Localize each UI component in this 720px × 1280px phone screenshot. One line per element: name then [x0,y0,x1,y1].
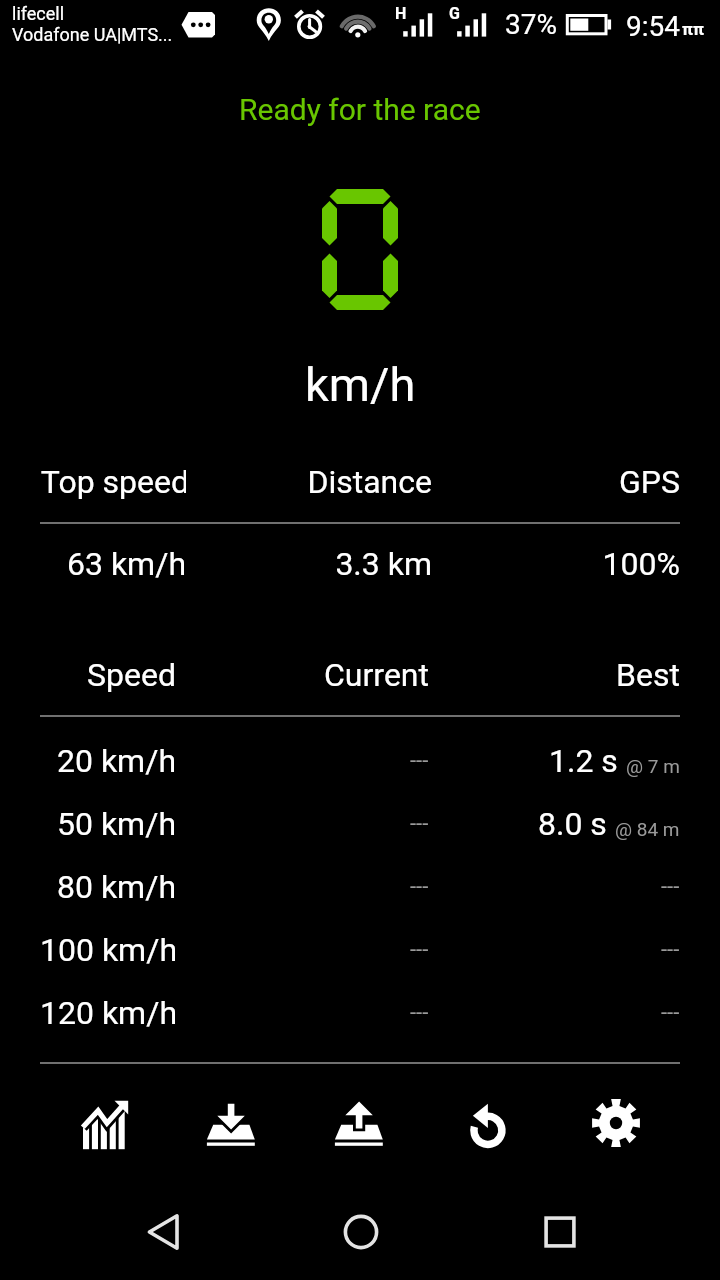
staticText: 63 km/h [40,545,186,583]
staticText: Top speed [40,463,186,501]
staticText: --- [661,1000,680,1026]
staticText: @ 84 m [615,818,680,840]
staticText: 50 km/h [40,805,176,843]
staticText: --- [661,874,680,900]
button[interactable]: Back [131,1200,195,1264]
staticText: 1.2 s [549,742,618,780]
staticText: --- [410,1000,429,1026]
staticText: 9:54 [626,10,680,43]
button[interactable]: Settings [552,1087,680,1159]
staticText: 100% [432,545,680,583]
staticText: 100 km/h [40,931,176,969]
staticText: --- [661,937,680,963]
staticText: --- [410,748,429,774]
staticText: 120 km/h [40,994,176,1032]
button[interactable]: Recents [528,1200,592,1264]
button[interactable]: Export [296,1087,424,1159]
button[interactable]: Import [168,1087,296,1159]
staticText: 20 km/h [40,742,176,780]
staticText: GPS [432,463,680,501]
staticText: Current [176,656,429,694]
staticText: G [449,4,460,23]
staticText: H [395,4,407,23]
staticText: 8.0 s [538,805,607,843]
staticText: --- [410,874,429,900]
staticText: Distance [186,463,432,501]
staticText: km/h [305,357,416,412]
staticText: Speed [40,656,176,694]
staticText: Vodafone UA|MTS... [12,24,173,45]
staticText: lifecell [12,3,65,24]
button[interactable]: Home [329,1200,393,1264]
staticText: @ 7 m [626,755,680,777]
staticText: Ready for the race [239,92,481,127]
staticText: 3.3 km [186,545,432,583]
staticText: --- [410,811,429,837]
staticText: Best [429,656,680,694]
button[interactable]: Reset [424,1087,552,1159]
staticText: 37% [505,8,557,41]
staticText: ππ [682,19,704,39]
staticText: --- [410,937,429,963]
staticText: 80 km/h [40,868,176,906]
button[interactable]: Statistics [40,1087,168,1159]
